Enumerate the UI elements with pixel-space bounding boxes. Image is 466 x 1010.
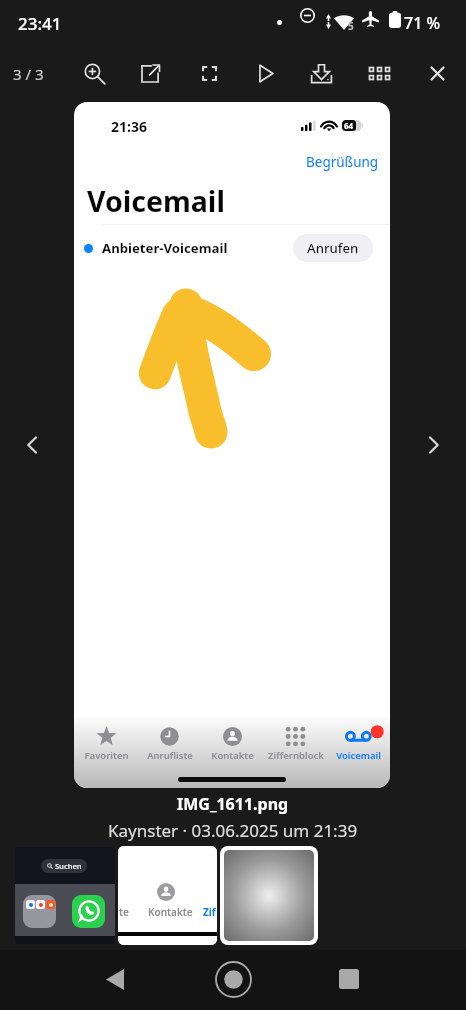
staticText: Kontakte bbox=[211, 749, 254, 762]
staticText: Favoriten bbox=[84, 749, 129, 762]
button[interactable] bbox=[224, 850, 314, 941]
staticText: Anbieter-Voicemail bbox=[102, 239, 228, 257]
button[interactable]: Suchen bbox=[15, 847, 115, 944]
button[interactable]: Next image bbox=[412, 423, 456, 467]
staticText: Anrufen bbox=[307, 239, 359, 257]
button[interactable]: Anrufen bbox=[293, 234, 373, 262]
button[interactable]: Voicemail bbox=[327, 726, 390, 762]
staticText: Voicemail bbox=[87, 182, 225, 221]
button[interactable]: Kontakte bbox=[201, 726, 264, 762]
button[interactable]: Anrufliste bbox=[138, 726, 201, 762]
button[interactable]: te bbox=[118, 846, 217, 945]
button[interactable]: Home bbox=[209, 955, 257, 1003]
staticText: Suchen bbox=[55, 861, 82, 871]
button[interactable]: Share bbox=[128, 51, 172, 95]
button[interactable]: Back bbox=[91, 955, 139, 1003]
staticText: te bbox=[119, 905, 129, 919]
button[interactable]: Close bbox=[415, 51, 459, 95]
staticText: IMG_1611.png bbox=[177, 793, 289, 815]
button[interactable]: Grid view bbox=[357, 51, 401, 95]
button[interactable]: Zoom in bbox=[72, 51, 116, 95]
button[interactable]: Recent apps bbox=[325, 955, 373, 1003]
staticText: Begrüßung bbox=[306, 153, 379, 171]
button[interactable]: Ziffernblock bbox=[264, 726, 327, 762]
staticText: 64 bbox=[344, 120, 354, 131]
staticText: Voicemail bbox=[336, 749, 381, 762]
staticText: 21:36 bbox=[111, 117, 147, 136]
staticText: 3 / 3 bbox=[13, 64, 44, 84]
button[interactable]: Favoriten bbox=[74, 726, 138, 762]
button[interactable]: Play slideshow bbox=[243, 51, 287, 95]
button[interactable]: Fullscreen bbox=[187, 51, 231, 95]
button[interactable]: 21:36 bbox=[74, 102, 390, 788]
button[interactable]: Anbieter-Voicemail bbox=[74, 225, 390, 271]
staticText: 23:41 bbox=[18, 12, 62, 35]
staticText: 71 % bbox=[404, 12, 441, 34]
button[interactable]: Download bbox=[299, 51, 343, 95]
button[interactable]: Previous image bbox=[10, 423, 54, 467]
staticText: Kontakte bbox=[148, 905, 193, 919]
staticText: Ziffernblock bbox=[268, 749, 324, 762]
staticText: Kaynster · 03.06.2025 um 21:39 bbox=[108, 819, 358, 842]
staticText: Anrufliste bbox=[147, 749, 193, 762]
staticText: Zif bbox=[203, 905, 216, 919]
staticText: 5 bbox=[348, 19, 354, 33]
button[interactable]: Begrüßung bbox=[302, 150, 383, 174]
